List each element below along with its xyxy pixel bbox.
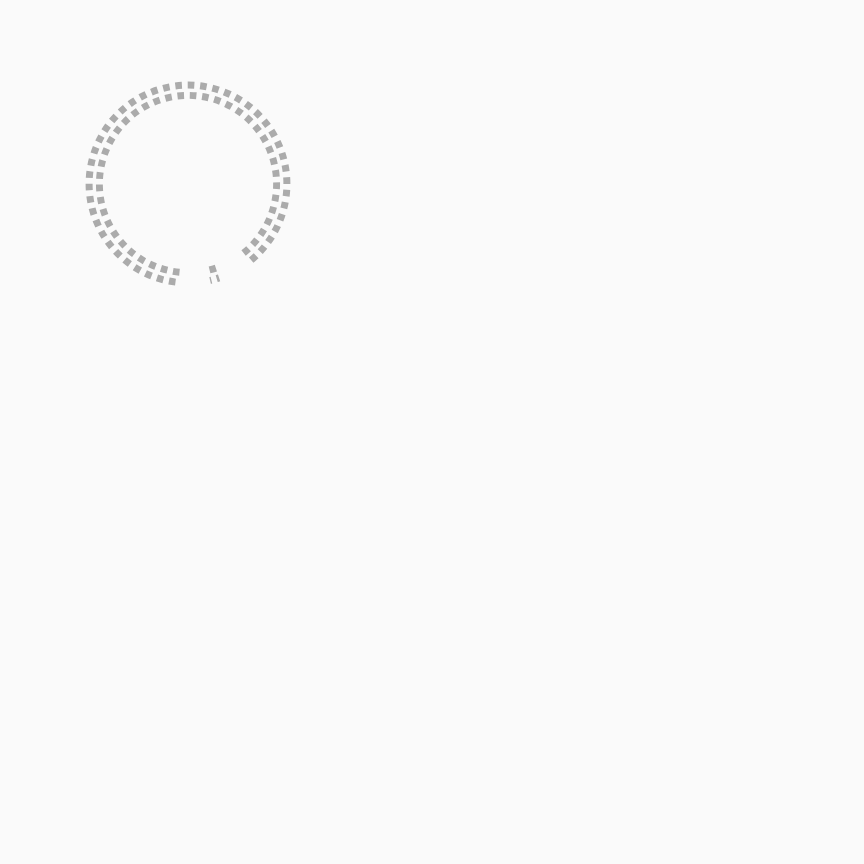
button[interactable]: Loading: [85, 81, 291, 287]
